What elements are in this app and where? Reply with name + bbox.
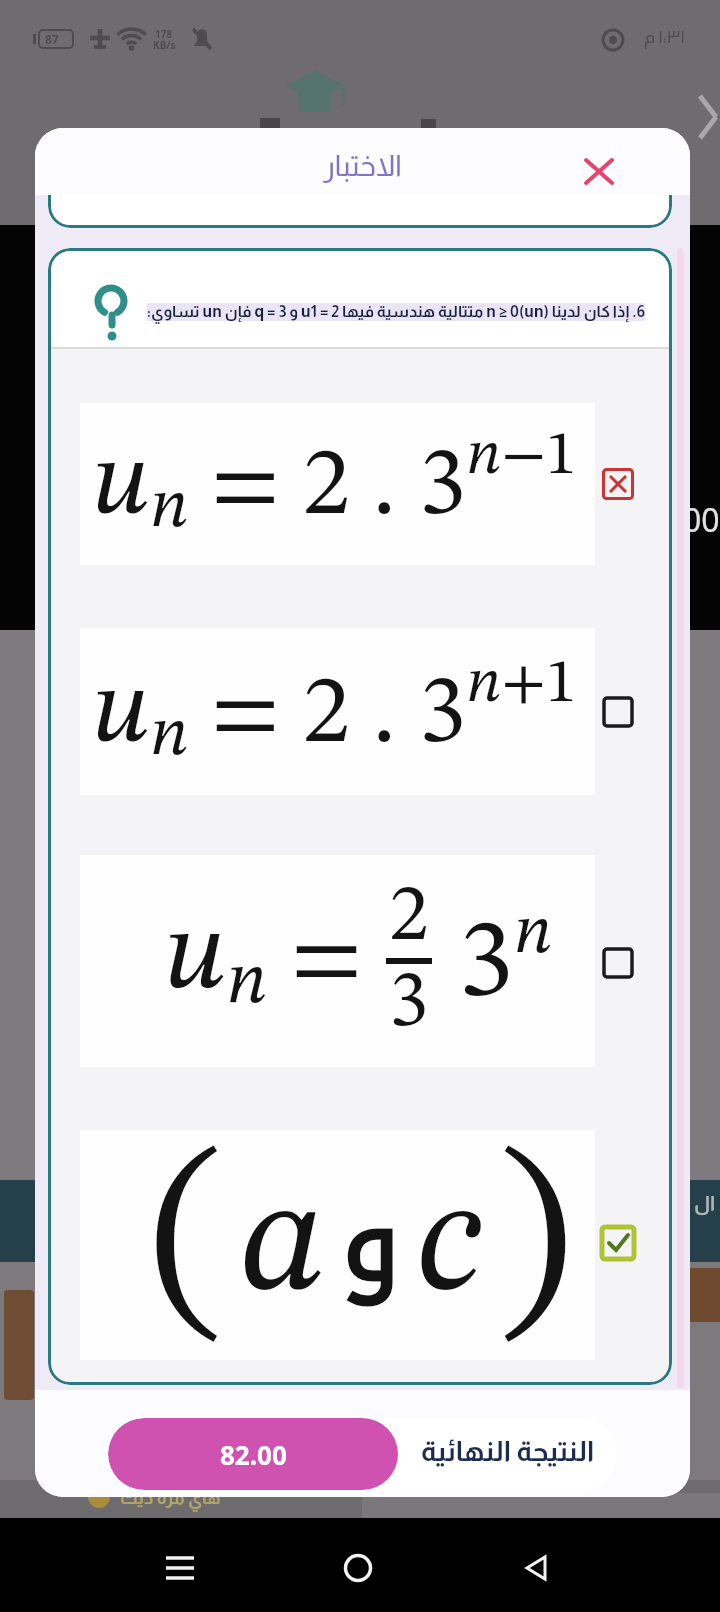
staticText: ) (498, 1138, 572, 1353)
staticText: 82.00 (220, 1437, 287, 1472)
button[interactable]: ( (80, 1130, 595, 1360)
staticText: 00 (683, 498, 720, 542)
button[interactable]: النتيجة النهائية (108, 1418, 617, 1490)
button[interactable] (602, 468, 634, 500)
staticText: 3n (432, 900, 553, 1022)
staticText: ١:٣١ م (644, 27, 686, 47)
staticText: 2 (389, 878, 429, 958)
staticText: الاختبار (35, 150, 690, 182)
button[interactable] (602, 947, 634, 979)
staticText: KB/s (153, 38, 176, 52)
staticText: هاي مرة ذيك (120, 1488, 221, 1508)
staticText: un = (164, 903, 386, 1020)
button[interactable] (330, 1540, 386, 1596)
staticText: النتيجة النهائية (398, 1436, 617, 1467)
button[interactable]: un = 2 . 3n−1 (80, 403, 595, 565)
button[interactable] (600, 1225, 636, 1261)
staticText: ( (150, 1138, 224, 1353)
staticText: a (240, 1166, 326, 1326)
staticText: 178 (155, 27, 173, 41)
staticText: un = 2 . 3n+1 (92, 654, 577, 770)
staticText: 3 (389, 964, 429, 1044)
button[interactable] (152, 1540, 208, 1596)
staticText: c (416, 1166, 482, 1326)
button[interactable] (577, 150, 621, 194)
button[interactable] (602, 696, 634, 728)
button[interactable]: un = (80, 855, 595, 1067)
staticText: 87 (45, 31, 59, 47)
button[interactable]: un = 2 . 3n+1 (80, 628, 595, 795)
staticText: ال (694, 1192, 716, 1214)
staticText: و (342, 1148, 400, 1343)
staticText: 6. إذا كان لدينا (un)n ≥ 0 متتالية هندسي… (146, 303, 645, 321)
button[interactable] (508, 1540, 564, 1596)
staticText: un = 2 . 3n−1 (92, 426, 577, 542)
